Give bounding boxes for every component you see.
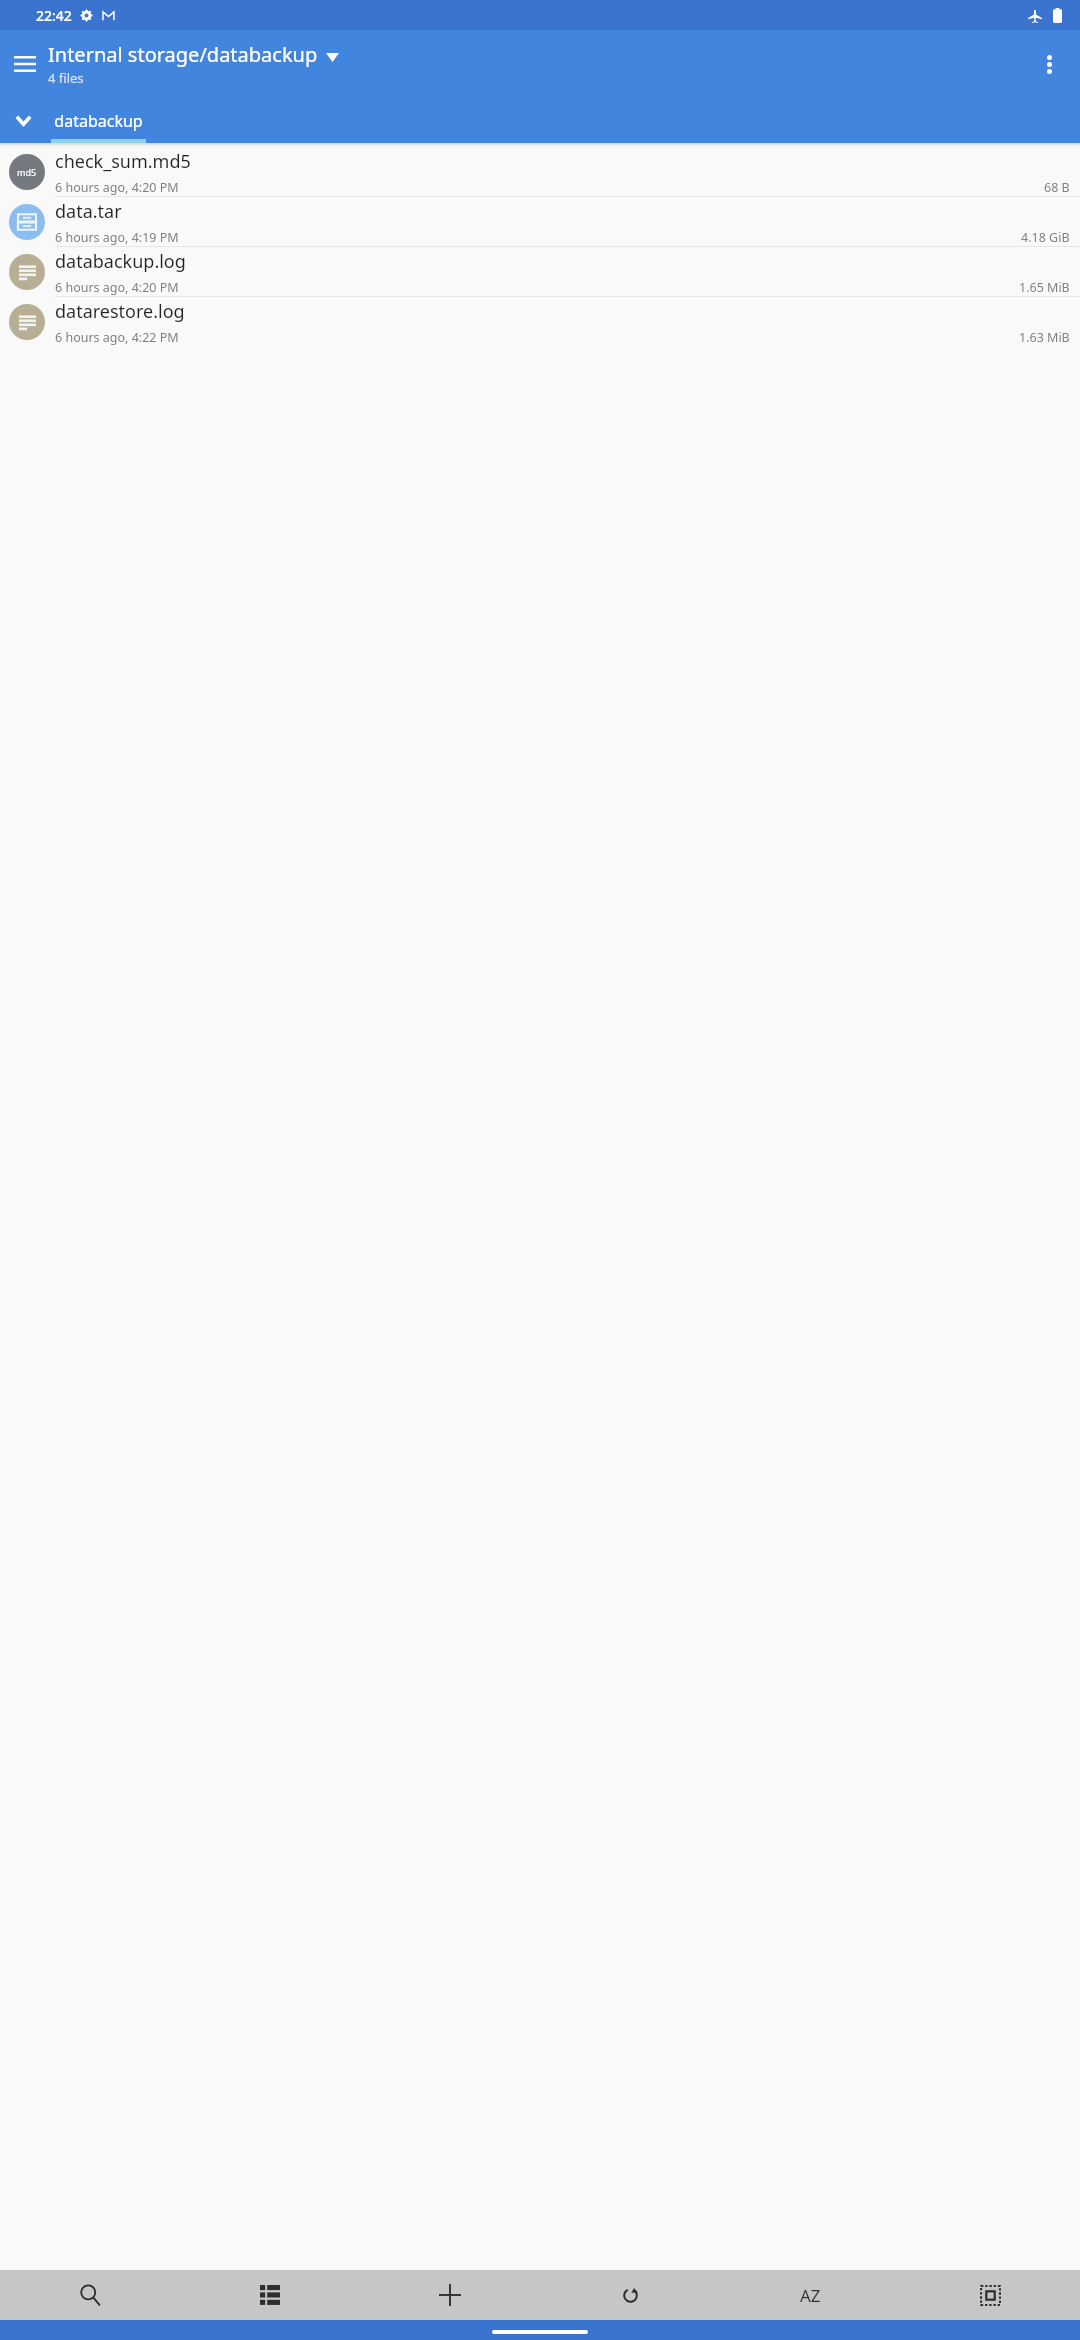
staticText: Internal storage/databackup [48,41,318,68]
button[interactable]: Select all [900,2270,1080,2320]
staticText: data.tar [55,199,122,224]
button[interactable]: Search [0,2270,180,2320]
button[interactable]: datarestore.log [0,297,1080,347]
staticText: 6 hours ago, 4:19 PM [55,229,179,246]
staticText: 6 hours ago, 4:20 PM [55,179,179,196]
staticText: AZ [800,2284,821,2307]
staticText: check_sum.md5 [55,149,191,174]
staticText: 1.65 MiB [1019,279,1070,296]
staticText: 22:42 [36,6,72,25]
staticText: datarestore.log [55,299,185,324]
staticText: 68 B [1044,179,1070,196]
button[interactable]: databackup [51,98,146,143]
button[interactable]: Expand breadcrumb [1,98,46,143]
staticText: 6 hours ago, 4:20 PM [55,279,179,296]
staticText: md5 [17,166,37,178]
staticText: 4.18 GiB [1021,229,1070,246]
button[interactable]: Refresh [540,2270,720,2320]
button[interactable]: Open navigation drawer [1,40,49,88]
staticText: 4 files [48,69,84,87]
button[interactable]: View mode [180,2270,360,2320]
button[interactable]: data.tar [0,197,1080,247]
staticText: databackup.log [55,249,186,274]
button[interactable]: md5 [0,147,1080,197]
button[interactable]: More options [1025,40,1073,88]
button[interactable]: Add [360,2270,540,2320]
staticText: 6 hours ago, 4:22 PM [55,329,179,346]
button[interactable]: Sort [720,2270,900,2320]
staticText: databackup [54,110,143,132]
button[interactable]: databackup.log [0,247,1080,297]
staticText: 1.63 MiB [1019,329,1070,346]
